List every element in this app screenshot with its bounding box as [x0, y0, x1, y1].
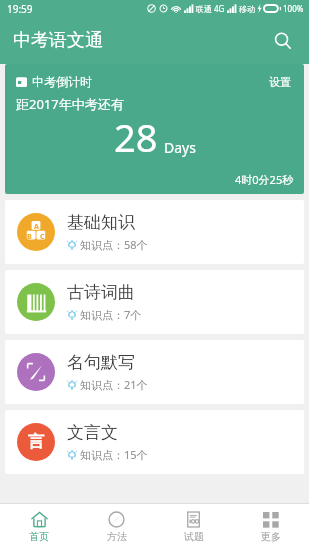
- staticText: 更多: [261, 530, 281, 543]
- staticText: 4时0分25秒: [235, 172, 294, 187]
- staticText: 名句默写: [67, 352, 135, 373]
- staticText: 首页: [29, 530, 49, 543]
- button[interactable]: 中考倒计时: [5, 64, 304, 194]
- button[interactable]: 名句默写: [5, 340, 304, 404]
- staticText: 知识点：21个: [80, 377, 148, 392]
- staticText: 19:59: [7, 2, 33, 16]
- staticText: 基础知识: [67, 212, 135, 233]
- button[interactable]: 古诗词曲: [5, 270, 304, 334]
- staticText: 方法: [107, 530, 127, 543]
- button[interactable]: 试题: [155, 504, 232, 550]
- button[interactable]: 更多: [232, 504, 309, 550]
- staticText: 4G: [214, 3, 225, 14]
- button[interactable]: A: [5, 200, 304, 264]
- staticText: C: [40, 232, 45, 242]
- button[interactable]: 设置: [266, 72, 294, 92]
- staticText: 文言文: [67, 422, 118, 443]
- staticText: 中考语文通: [13, 29, 103, 52]
- staticText: 言: [28, 432, 44, 452]
- staticText: 知识点：7个: [80, 307, 142, 322]
- button[interactable]: 言: [5, 410, 304, 474]
- staticText: 28: [114, 111, 158, 163]
- staticText: B: [27, 232, 32, 242]
- button[interactable]: 方法: [78, 504, 155, 550]
- button[interactable]: Search: [265, 23, 301, 59]
- staticText: 设置: [269, 75, 291, 89]
- staticText: 联通: [196, 4, 212, 14]
- staticText: 试题: [184, 530, 204, 543]
- staticText: 知识点：15个: [80, 447, 148, 462]
- staticText: 知识点：58个: [80, 237, 148, 252]
- button[interactable]: 首页: [0, 504, 78, 550]
- staticText: 距2017年中考还有: [16, 95, 124, 113]
- staticText: Days: [164, 138, 196, 157]
- staticText: 古诗词曲: [67, 282, 135, 303]
- staticText: 移动: [239, 4, 255, 14]
- staticText: A: [34, 222, 39, 232]
- staticText: 中考倒计时: [32, 74, 92, 89]
- staticText: 100%: [283, 3, 304, 14]
